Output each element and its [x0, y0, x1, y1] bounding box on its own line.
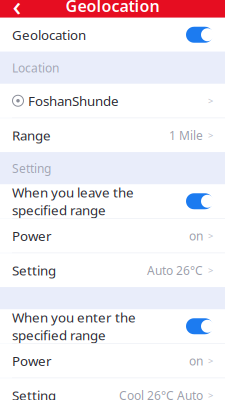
button[interactable]: When you leave the specified range	[0, 184, 225, 218]
staticText: >	[208, 129, 213, 141]
button[interactable]: Back	[0, 0, 34, 18]
staticText: Setting	[12, 386, 56, 400]
staticText: When you enter the specified range	[12, 308, 136, 344]
staticText: Setting	[12, 160, 51, 176]
staticText: Cool 26°C Auto	[119, 387, 203, 400]
staticText: Setting	[12, 261, 56, 279]
staticText: Geolocation	[12, 26, 86, 44]
button[interactable]: FoshanShunde	[0, 84, 225, 118]
button[interactable]: Setting	[0, 378, 225, 400]
staticText: >	[208, 389, 213, 400]
button[interactable]: Range	[0, 118, 225, 152]
staticText: >	[208, 95, 213, 107]
staticText: Geolocation	[65, 0, 159, 16]
button[interactable]: Power	[0, 344, 225, 378]
button[interactable]: Geolocation	[0, 18, 225, 52]
staticText: Auto 26°C	[147, 262, 203, 278]
staticText: 1 Mile	[169, 127, 203, 143]
button[interactable]: When you enter the specified range	[0, 309, 225, 343]
button[interactable]: Setting	[0, 253, 225, 287]
staticText: When you leave the specified range	[12, 183, 134, 219]
staticText: Power	[12, 227, 52, 245]
staticText: Power	[12, 352, 52, 370]
staticText: >	[208, 230, 213, 242]
staticText: ‹	[12, 0, 21, 23]
staticText: >	[208, 355, 213, 367]
button[interactable]: Power	[0, 219, 225, 253]
staticText: on	[189, 228, 203, 244]
staticText: on	[189, 353, 203, 369]
staticText: Location	[12, 60, 59, 76]
staticText: Range	[12, 126, 51, 144]
staticText: >	[208, 264, 213, 276]
staticText: FoshanShunde	[28, 92, 119, 110]
